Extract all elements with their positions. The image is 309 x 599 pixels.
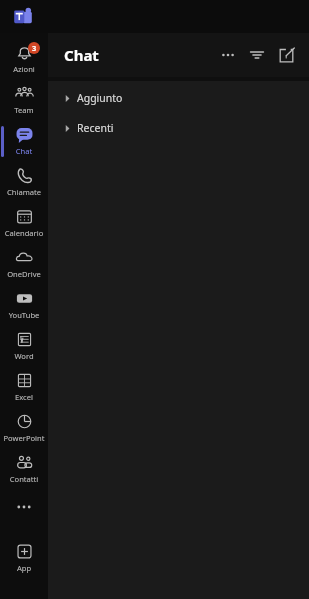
staticText: Contatti (0, 474, 48, 484)
button[interactable]: Chat (0, 121, 48, 162)
staticText: 3 (32, 43, 37, 53)
button[interactable]: Chiamate (0, 162, 48, 203)
staticText: Excel (0, 392, 48, 402)
button[interactable]: OneDrive (0, 244, 48, 285)
staticText: Team (0, 105, 48, 115)
staticText: Calendario (0, 228, 48, 238)
staticText: Recenti (77, 121, 114, 135)
button[interactable]: PowerPoint (0, 408, 48, 449)
button[interactable]: Microsoft Teams (12, 6, 34, 28)
button[interactable]: Team (0, 80, 48, 121)
button[interactable]: App (0, 538, 48, 579)
button[interactable]: Calendario (0, 203, 48, 244)
staticText: PowerPoint (0, 433, 48, 443)
staticText: Aggiunto (77, 91, 123, 105)
staticText: Chat (0, 146, 48, 156)
staticText: Azioni (0, 64, 48, 74)
button[interactable]: Word (0, 326, 48, 367)
button[interactable]: Altre opzioni (217, 44, 239, 66)
staticText: OneDrive (0, 269, 48, 279)
button[interactable]: Filtro (246, 44, 268, 66)
button[interactable]: Excel (0, 367, 48, 408)
staticText: Chiamate (0, 187, 48, 197)
button[interactable]: Recenti (48, 119, 309, 137)
staticText: Word (0, 351, 48, 361)
button[interactable]: Nuova chat (275, 44, 297, 66)
staticText: YouTube (0, 310, 48, 320)
button[interactable]: Contatti (0, 449, 48, 490)
button[interactable]: YouTube (0, 285, 48, 326)
staticText: App (0, 563, 48, 573)
staticText: Chat (64, 45, 99, 65)
button[interactable]: Aggiunto (48, 89, 309, 107)
button[interactable]: 3 (0, 39, 48, 80)
button[interactable]: Altro (0, 490, 48, 524)
